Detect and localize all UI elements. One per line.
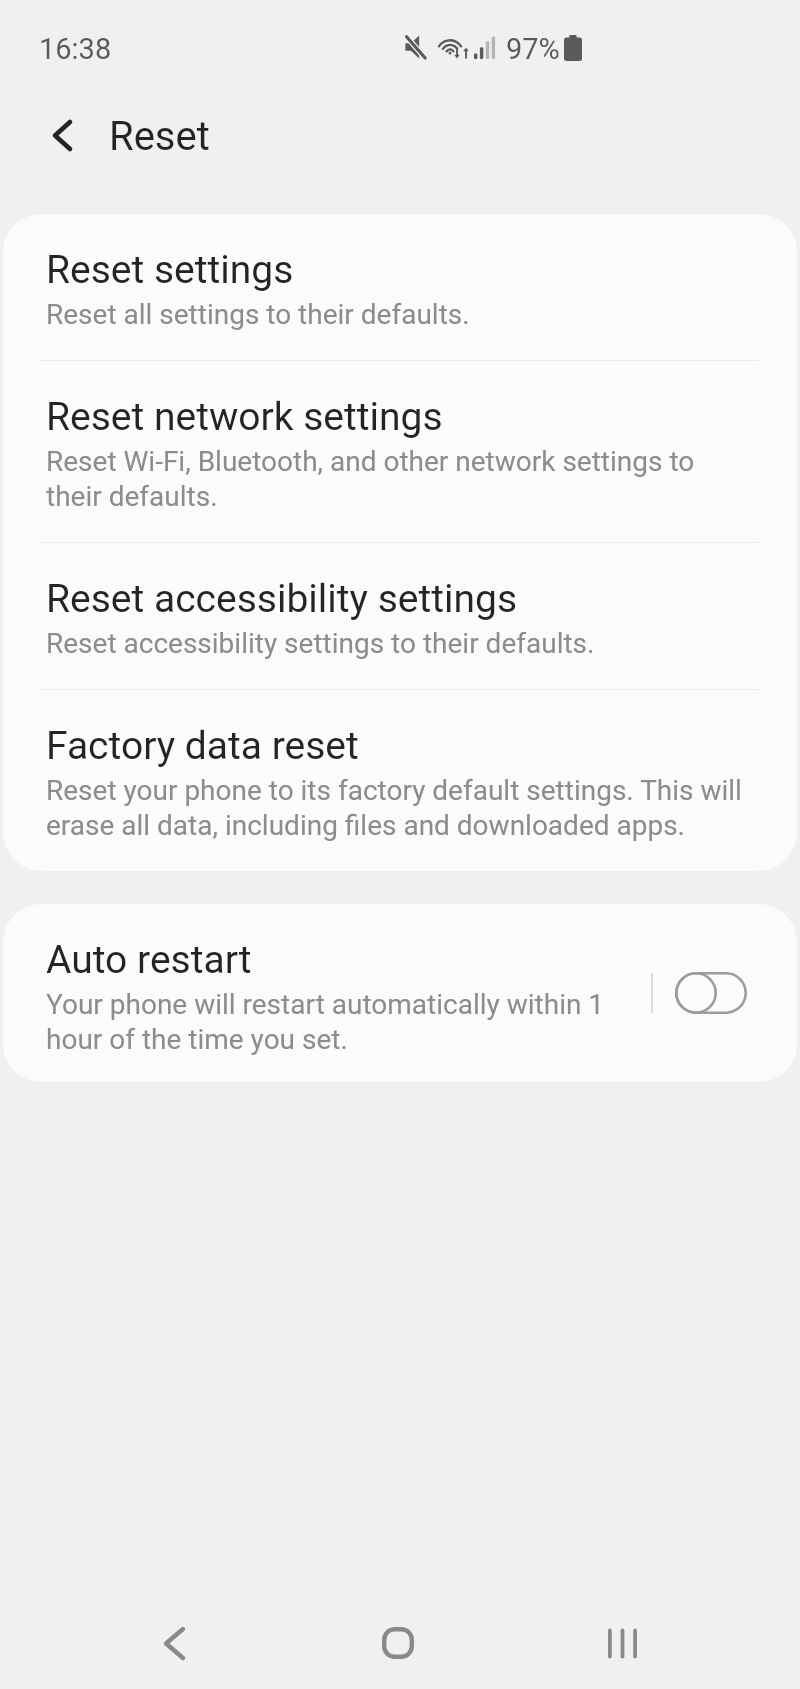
staticText: 97%	[506, 32, 560, 66]
button[interactable]: Auto restart	[675, 972, 747, 1014]
button[interactable]: Navigate back	[62, 1597, 286, 1689]
staticText: 16:38	[39, 32, 112, 66]
button[interactable]: Factory data reset	[3, 690, 797, 871]
staticText: Reset accessibility settings	[46, 576, 518, 622]
button[interactable]: Reset network settings	[3, 361, 797, 542]
button[interactable]: Reset accessibility settings	[3, 543, 797, 689]
button[interactable]: Recent apps	[510, 1597, 734, 1689]
staticText: Reset settings	[46, 247, 294, 293]
staticText: Your phone will restart automatically wi…	[46, 988, 615, 1056]
staticText: Reset your phone to its factory default …	[46, 774, 750, 842]
staticText: Reset network settings	[46, 394, 443, 440]
button[interactable]: Home	[286, 1597, 510, 1689]
staticText: Factory data reset	[46, 723, 359, 769]
staticText: Reset	[109, 113, 210, 160]
button[interactable]: Auto restart	[3, 904, 651, 1082]
staticText: Auto restart	[46, 937, 252, 983]
staticText: Reset all settings to their defaults.	[46, 298, 470, 331]
button[interactable]: Reset settings	[3, 214, 797, 360]
staticText: Reset accessibility settings to their de…	[46, 627, 595, 660]
button[interactable]: Navigate up	[31, 104, 93, 166]
staticText: Reset Wi-Fi, Bluetooth, and other networ…	[46, 445, 750, 513]
